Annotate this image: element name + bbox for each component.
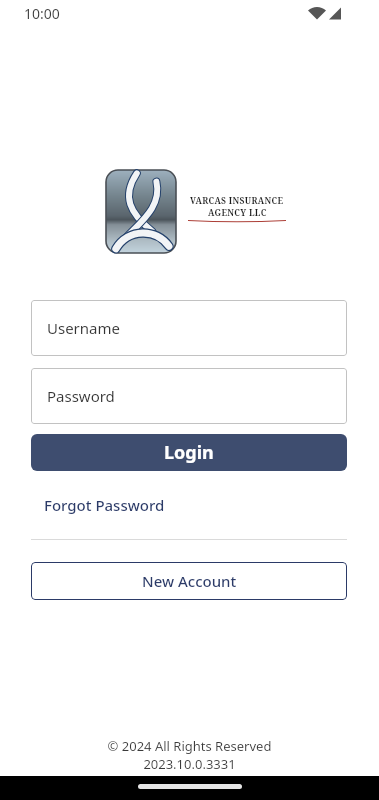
staticText: New Account [142,571,237,591]
button[interactable]: Password [31,368,347,424]
button[interactable]: Login [31,434,347,471]
button[interactable]: New Account [31,562,347,600]
staticText: Forgot Password [44,495,165,515]
staticText: Login [164,440,214,465]
staticText: AGENCY LLC [208,207,267,219]
staticText: © 2024 All Rights Reserved [0,737,379,755]
staticText: 2023.10.0.3331 [0,755,379,773]
staticText: VARCAS INSURANCE [190,195,284,207]
button[interactable]: Forgot Password [44,495,165,515]
button[interactable]: Username [31,300,347,356]
staticText: Password [47,386,115,406]
staticText: 10:00 [24,4,60,23]
staticText: Username [47,318,120,338]
